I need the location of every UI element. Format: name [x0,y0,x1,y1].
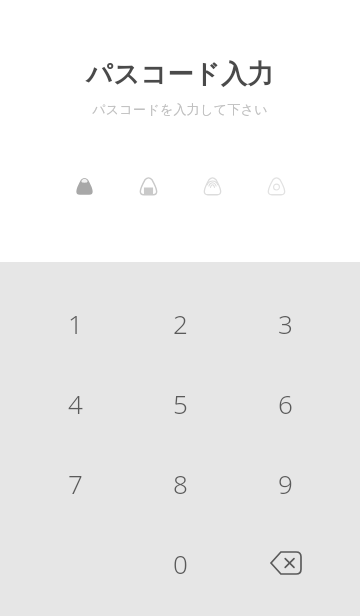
staticText: 8 [173,466,188,501]
button[interactable]: 9 [233,443,338,523]
button[interactable]: 7 [23,443,128,523]
staticText: 3 [278,306,293,341]
button[interactable]: 8 [128,443,233,523]
staticText: 0 [173,546,188,581]
button[interactable]: 4 [23,363,128,443]
button[interactable]: 3 [233,283,338,363]
staticText: 7 [68,466,83,501]
button[interactable]: 2 [128,283,233,363]
staticText: 1 [68,306,83,341]
button[interactable]: 5 [128,363,233,443]
staticText: 9 [278,466,293,501]
staticText: 2 [173,306,188,341]
button[interactable]: Backspace [233,523,338,603]
button[interactable]: 0 [128,523,233,603]
staticText: 5 [173,386,188,421]
staticText: パスコードを入力して下さい [92,101,268,117]
staticText: 6 [278,386,293,421]
button[interactable]: 1 [23,283,128,363]
button[interactable]: 6 [233,363,338,443]
staticText: パスコード入力 [86,58,274,91]
staticText: 4 [68,386,83,421]
